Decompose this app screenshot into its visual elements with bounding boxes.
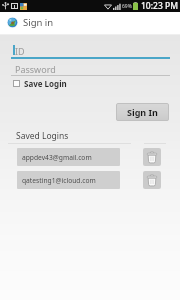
button[interactable]: qatesting1@icloud.com bbox=[17, 171, 120, 189]
button[interactable]: Save Login bbox=[12, 77, 68, 90]
staticText: Sign In bbox=[127, 106, 158, 118]
staticText: ID bbox=[15, 45, 25, 57]
staticText: Sign in bbox=[23, 16, 54, 29]
staticText: Password bbox=[15, 63, 56, 75]
staticText: Save Login bbox=[24, 78, 67, 89]
button[interactable]: appdev43@gmail.com bbox=[17, 148, 120, 166]
staticText: qatesting1@icloud.com bbox=[22, 176, 96, 185]
button[interactable]: Delete saved login bbox=[143, 148, 161, 166]
staticText: 10:23 PM bbox=[141, 0, 178, 12]
button[interactable]: Sign In bbox=[116, 103, 169, 121]
staticText: appdev43@gmail.com bbox=[22, 153, 92, 162]
button[interactable]: Delete saved login bbox=[143, 171, 161, 189]
staticText: 69% bbox=[122, 3, 132, 10]
staticText: Saved Logins bbox=[16, 130, 69, 142]
